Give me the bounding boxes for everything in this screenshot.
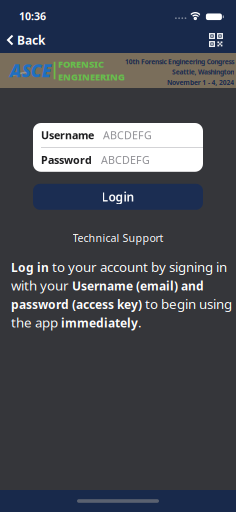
staticText: November 1 - 4, 2024 — [167, 78, 234, 87]
button[interactable]: Scan QR Code — [209, 33, 236, 47]
button[interactable]: Password — [33, 148, 203, 172]
button[interactable]: Login — [33, 184, 203, 210]
staticText: FORENSIC — [58, 58, 104, 70]
staticText: ABCDEFG — [103, 128, 152, 142]
button[interactable]: Username — [33, 123, 203, 147]
staticText: ABCDEFG — [101, 153, 150, 167]
staticText: ASCE — [10, 59, 52, 82]
staticText: 10:36 — [19, 9, 46, 23]
staticText: Username — [41, 128, 94, 142]
staticText: Log in to your account by signing in wit… — [11, 258, 232, 331]
staticText: ENGINEERING — [58, 71, 125, 83]
staticText: Back — [17, 32, 45, 48]
button[interactable]: Technical Support — [72, 231, 163, 245]
staticText: Login — [101, 189, 134, 205]
staticText: 10th Forensic Engineering Congress — [125, 57, 234, 66]
staticText: Seattle, Washington — [172, 68, 234, 76]
staticText: Password — [41, 153, 92, 167]
staticText: Technical Support — [72, 231, 163, 245]
button[interactable]: Back — [0, 32, 45, 48]
